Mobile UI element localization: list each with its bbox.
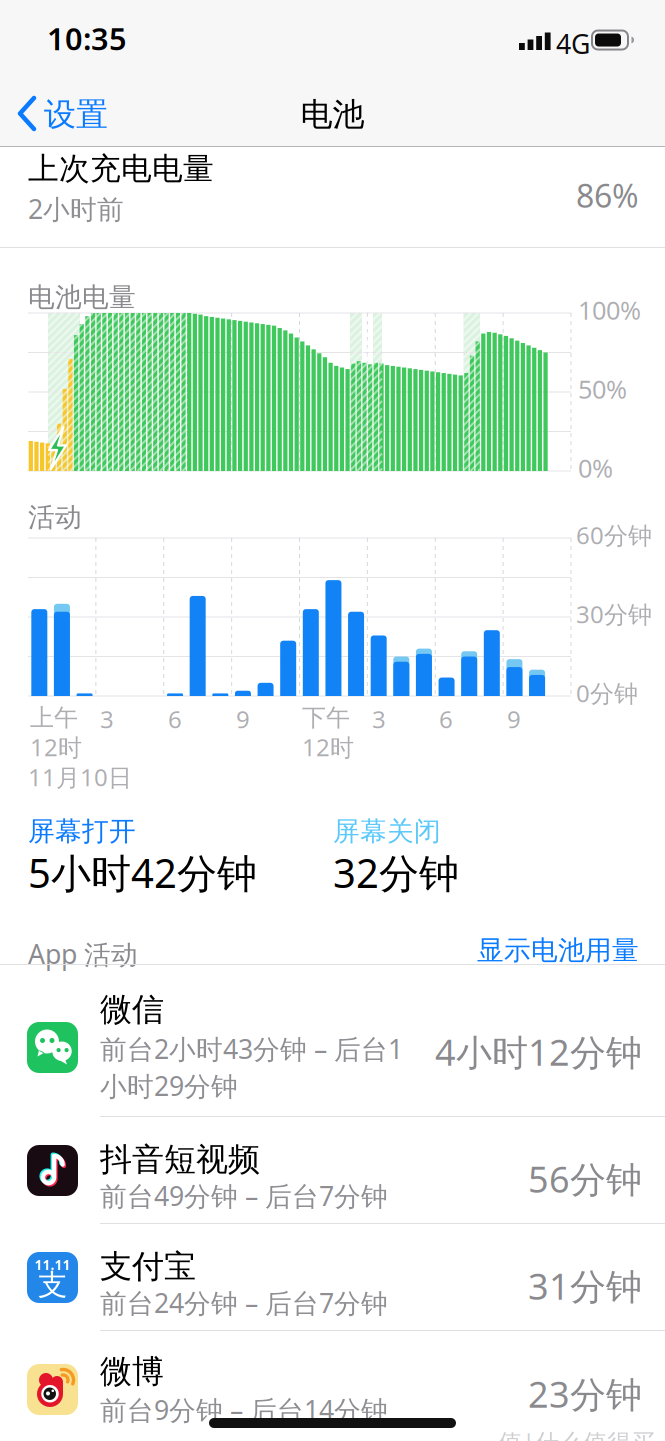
staticText: 12时 (302, 731, 354, 763)
staticText: 3 (372, 703, 386, 735)
staticText: 屏幕打开 (28, 815, 136, 848)
staticText: 30分钟 (576, 598, 652, 630)
staticText: 支付宝 (100, 1247, 196, 1286)
staticText: 60分钟 (576, 519, 652, 551)
staticText: 50% (578, 372, 627, 406)
staticText: 小时29分钟 (100, 1068, 238, 1103)
staticText: 6 (168, 703, 182, 735)
staticText: 100% (578, 293, 641, 327)
staticText: 前台9分钟 – 后台14分钟 (100, 1392, 388, 1427)
button[interactable]: 返回设置 (17, 84, 127, 143)
staticText: 6 (439, 703, 453, 735)
staticText: 9 (236, 703, 250, 735)
button[interactable]: 屏幕关闭 (333, 815, 583, 900)
staticText: 4G (556, 26, 590, 61)
staticText: 31分钟 (528, 1262, 642, 1310)
staticText: 0分钟 (576, 677, 638, 709)
staticText: 10:35 (47, 18, 127, 59)
button[interactable]: 显示电池用量 (339, 934, 639, 967)
staticText: 12时 (30, 731, 82, 763)
staticText: 微博 (100, 1352, 164, 1391)
staticText: 56分钟 (528, 1155, 642, 1203)
staticText: 支 (38, 1267, 67, 1303)
button[interactable]: 微信 (0, 965, 665, 1117)
staticText: 32分钟 (333, 846, 459, 899)
staticText: 设置 (44, 95, 108, 134)
button[interactable]: 微博 (0, 1331, 665, 1441)
staticText: 抖音短视频 (100, 1140, 260, 1179)
staticText: 86% (576, 174, 639, 216)
button[interactable]: 屏幕打开 (28, 815, 318, 900)
staticText: 屏幕关闭 (333, 815, 441, 848)
staticText: 上午 (30, 703, 78, 732)
staticText: 0% (578, 451, 613, 485)
staticText: 前台49分钟 – 后台7分钟 (100, 1178, 388, 1213)
staticText: 9 (507, 703, 521, 735)
staticText: 上次充电电量 (28, 150, 214, 188)
staticText: 2小时前 (28, 191, 124, 226)
staticText: 前台2小时43分钟 – 后台1 (100, 1031, 403, 1066)
staticText: 23分钟 (528, 1370, 642, 1418)
staticText: 值|什么值得买 (498, 1426, 655, 1441)
button[interactable]: 11.11 (0, 1224, 665, 1331)
staticText: 5小时42分钟 (28, 846, 257, 899)
staticText: 3 (100, 703, 114, 735)
staticText: 4小时12分钟 (435, 1028, 642, 1076)
staticText: 电池电量 (28, 281, 136, 314)
staticText: 活动 (28, 501, 82, 534)
staticText: 11.11 (34, 1256, 70, 1274)
staticText: 微信 (100, 990, 164, 1029)
staticText: App 活动 (28, 936, 138, 972)
staticText: 显示电池用量 (477, 934, 639, 967)
staticText: 下午 (302, 703, 350, 732)
staticText: 11月10日 (28, 761, 132, 793)
staticText: 前台24分钟 – 后台7分钟 (100, 1285, 388, 1320)
staticText: 电池 (300, 95, 364, 134)
button[interactable]: 抖音短视频 (0, 1117, 665, 1224)
